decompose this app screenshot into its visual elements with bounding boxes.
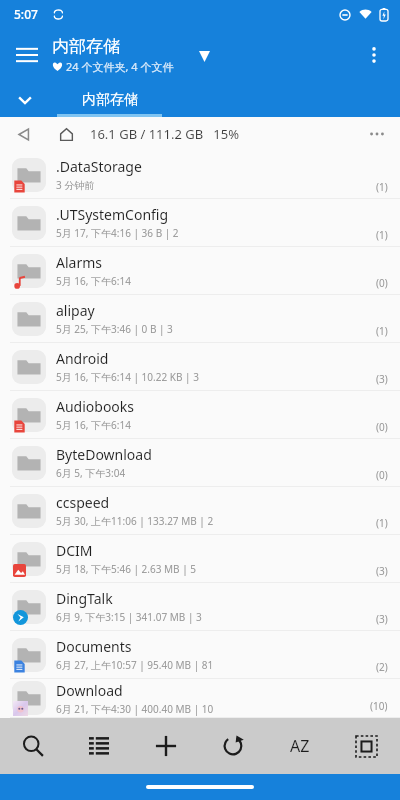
button[interactable]: Search: [0, 718, 66, 774]
staticText: 6月 21, 下午4:30 | 400.40 MB | 10: [56, 702, 214, 716]
staticText: (0): [376, 420, 388, 434]
staticText: 3 分钟前: [56, 178, 95, 192]
staticText: .DataStorage: [56, 157, 142, 176]
staticText: (3): [376, 612, 388, 626]
staticText: (0): [376, 468, 388, 482]
staticText: (1): [376, 516, 388, 530]
button[interactable]: Refresh: [199, 718, 266, 774]
staticText: (0): [376, 276, 388, 290]
button[interactable]: More options: [354, 35, 394, 75]
button[interactable]: 内部存储: [57, 82, 162, 117]
staticText: (3): [376, 564, 388, 578]
staticText: 5月 17, 下午4:16 | 36 B | 2: [56, 226, 179, 240]
button[interactable]: More: [360, 117, 394, 151]
staticText: 5月 18, 下午5:46 | 2.63 MB | 5: [56, 562, 197, 576]
staticText: alipay: [56, 301, 95, 320]
staticText: Audiobooks: [56, 397, 135, 416]
staticText: ByteDownload: [56, 445, 152, 464]
staticText: 5月 30, 上午11:06 | 133.27 MB | 2: [56, 514, 214, 528]
button[interactable]: Alarms: [0, 247, 400, 295]
button[interactable]: Sort: [266, 718, 333, 774]
button[interactable]: ByteDownload: [0, 439, 400, 487]
button[interactable]: ccspeed: [0, 487, 400, 535]
staticText: (10): [370, 699, 388, 713]
staticText: 5月 25, 下午3:46 | 0 B | 3: [56, 322, 173, 336]
button[interactable]: 16.1 GB / 111.2 GB 15%: [90, 125, 240, 143]
button[interactable]: Home: [52, 120, 80, 148]
staticText: Download: [56, 681, 123, 700]
button[interactable]: alipay: [0, 295, 400, 343]
button[interactable]: DingTalk: [0, 583, 400, 631]
button[interactable]: Expand: [190, 42, 218, 70]
button[interactable]: List view: [66, 718, 132, 774]
staticText: 5月 16, 下午6:14: [56, 274, 131, 288]
staticText: Android: [56, 349, 109, 368]
button[interactable]: Collapse: [8, 83, 42, 117]
staticText: 5月 16, 下午6:14: [56, 418, 131, 432]
button[interactable]: Add: [132, 718, 199, 774]
staticText: AZ: [290, 735, 310, 757]
staticText: 内部存储: [82, 91, 138, 109]
button[interactable]: Download: [0, 679, 400, 718]
button[interactable]: .DataStorage: [0, 151, 400, 199]
button[interactable]: Audiobooks: [0, 391, 400, 439]
staticText: (1): [376, 180, 388, 194]
staticText: ccspeed: [56, 493, 110, 512]
staticText: 24 个文件夹, 4 个文件: [66, 59, 174, 74]
button[interactable]: Documents: [0, 631, 400, 679]
staticText: DCIM: [56, 541, 93, 560]
staticText: 6月 5, 下午3:04: [56, 466, 126, 480]
staticText: 5月 16, 下午6:14 | 10.22 KB | 3: [56, 370, 199, 384]
staticText: (3): [376, 372, 388, 386]
staticText: 5:07: [14, 6, 38, 22]
button[interactable]: Select: [333, 718, 400, 774]
button[interactable]: Menu: [6, 34, 48, 76]
staticText: (2): [376, 660, 388, 674]
staticText: 6月 27, 上午10:57 | 95.40 MB | 81: [56, 658, 214, 672]
staticText: 内部存储: [52, 36, 120, 57]
button[interactable]: Android: [0, 343, 400, 391]
staticText: 6月 9, 下午3:15 | 341.07 MB | 3: [56, 610, 202, 624]
staticText: DingTalk: [56, 589, 113, 608]
staticText: Documents: [56, 637, 132, 656]
button[interactable]: Back: [8, 119, 38, 149]
staticText: (1): [376, 324, 388, 338]
staticText: Alarms: [56, 253, 102, 272]
staticText: .UTSystemConfig: [56, 205, 169, 224]
button[interactable]: .UTSystemConfig: [0, 199, 400, 247]
button[interactable]: DCIM: [0, 535, 400, 583]
staticText: (1): [376, 228, 388, 242]
